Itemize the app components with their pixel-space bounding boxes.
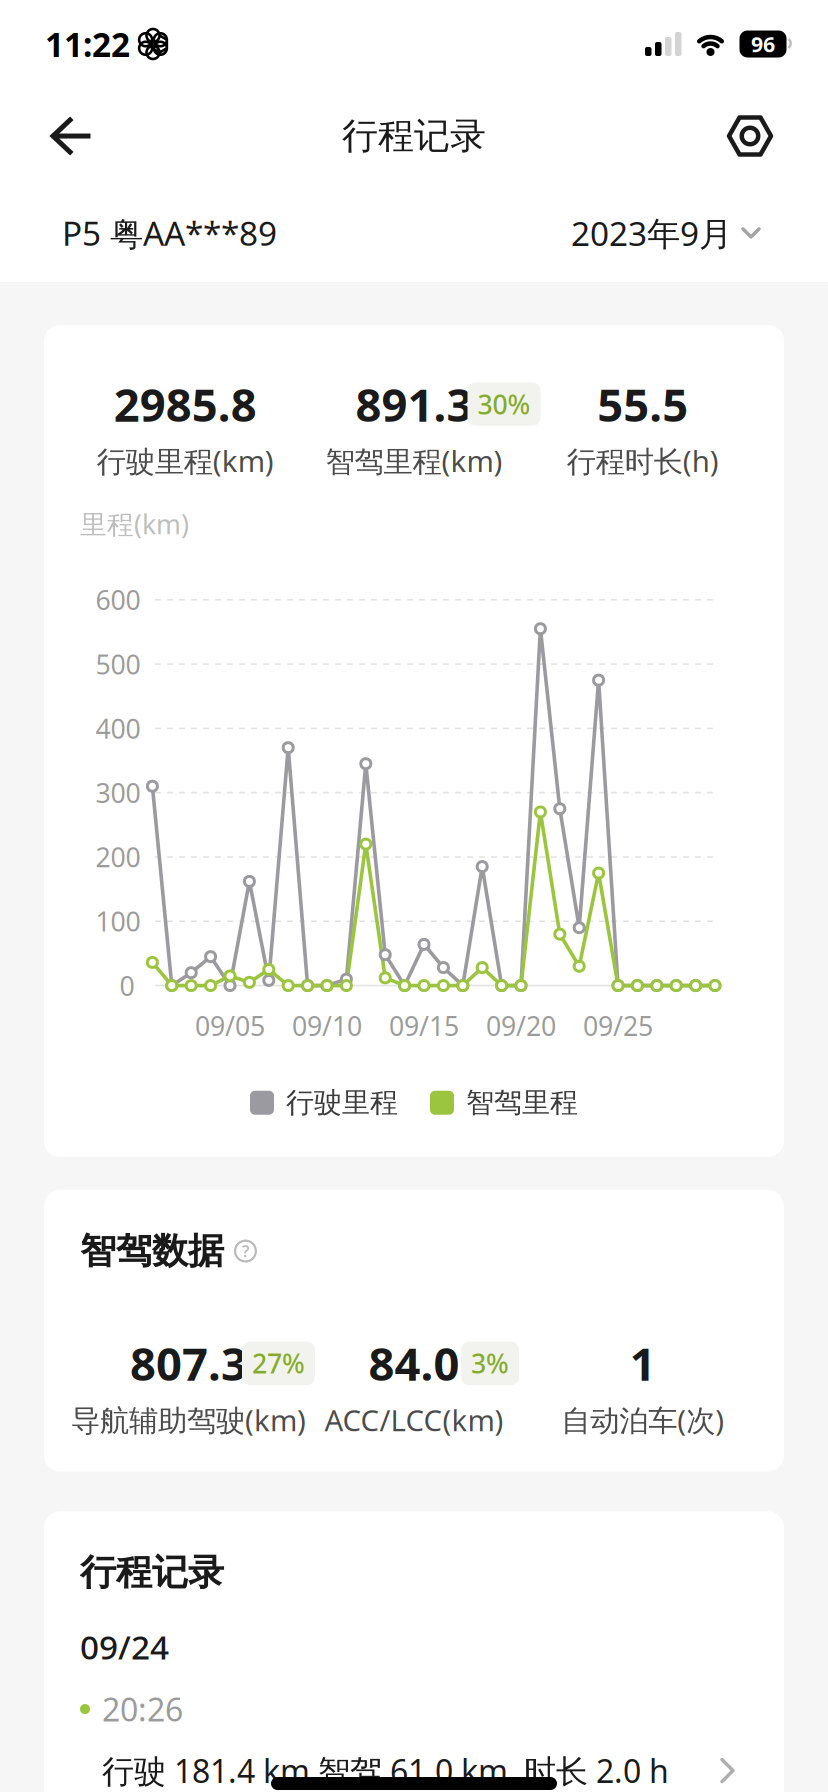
staticText: 400: [95, 711, 140, 746]
button[interactable]: 2023年9月: [571, 211, 760, 255]
button[interactable]: Settings: [720, 106, 780, 166]
staticText: 09/20: [486, 1008, 556, 1043]
staticText: 行驶里程: [286, 1086, 398, 1120]
staticText: 行驶 181.4 km 智驾 61.0 km 时长 2.0 h: [102, 1749, 669, 1792]
staticText: 行程记录: [80, 1550, 224, 1594]
staticText: 2985.8: [114, 374, 257, 434]
staticText: 300: [95, 775, 140, 810]
staticText: P5 粤AA***89: [62, 211, 277, 255]
staticText: 30%: [477, 386, 530, 422]
staticText: ACC/LCC(km): [324, 1400, 503, 1439]
staticText: 1: [630, 1333, 656, 1393]
staticText: 09/15: [389, 1008, 459, 1043]
staticText: 27%: [252, 1346, 305, 1381]
staticText: 200: [95, 839, 140, 875]
staticText: 891.3: [355, 374, 472, 434]
staticText: 行程时长(h): [567, 441, 719, 480]
staticText: 3%: [471, 1346, 509, 1381]
staticText: 807.3: [130, 1333, 247, 1393]
staticText: 600: [95, 582, 140, 617]
staticText: 智驾里程(km): [325, 441, 502, 480]
button[interactable]: 20:26: [44, 1669, 784, 1792]
staticText: 20:26: [102, 1688, 183, 1730]
staticText: 55.5: [597, 374, 688, 434]
staticText: 09/25: [583, 1008, 653, 1043]
staticText: 导航辅助驾驶(km): [71, 1400, 306, 1439]
button[interactable]: Back: [40, 106, 100, 166]
staticText: 0: [119, 968, 134, 1003]
staticText: 11:22: [45, 22, 130, 66]
staticText: 自动泊车(次): [561, 1400, 724, 1439]
staticText: 09/24: [80, 1624, 169, 1669]
button[interactable]: Help: [234, 1240, 257, 1263]
staticText: 里程(km): [80, 506, 189, 542]
staticText: 智驾里程: [466, 1086, 578, 1120]
staticText: 09/05: [195, 1008, 265, 1043]
staticText: 96: [751, 30, 775, 58]
staticText: 84.0: [368, 1333, 459, 1393]
staticText: 09/10: [292, 1008, 362, 1043]
staticText: 行程记录: [342, 114, 486, 158]
staticText: ?: [242, 1240, 249, 1262]
staticText: 行驶里程(km): [97, 441, 274, 480]
staticText: 100: [95, 904, 140, 939]
staticText: 2023年9月: [571, 211, 732, 255]
staticText: 智驾数据: [80, 1229, 224, 1273]
staticText: 500: [95, 646, 140, 682]
